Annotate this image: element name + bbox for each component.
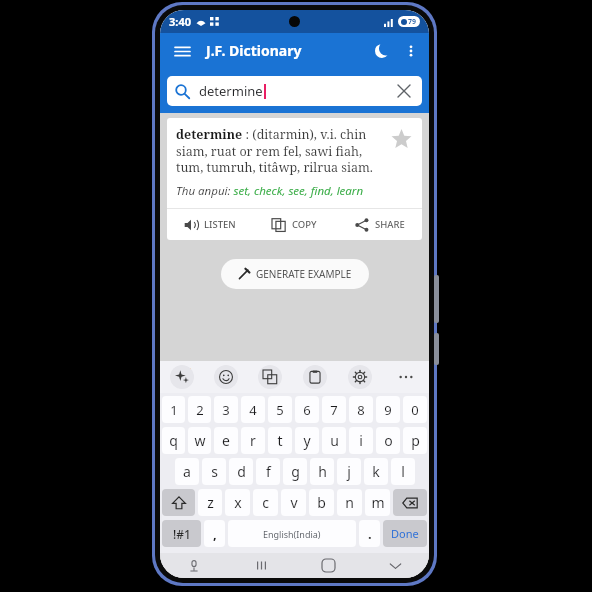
- button[interactable]: 9: [376, 396, 400, 423]
- staticText: determine : (ditarmin), v.i. chin siam, …: [176, 126, 378, 175]
- staticText: t: [277, 431, 283, 450]
- button[interactable]: Toggle dark mode: [367, 36, 397, 66]
- button[interactable]: x: [225, 489, 250, 516]
- staticText: 79: [408, 17, 417, 27]
- button[interactable]: Clear search: [390, 77, 418, 105]
- button[interactable]: e: [214, 427, 238, 454]
- button[interactable]: Backspace: [393, 489, 427, 516]
- staticText: d: [237, 462, 246, 481]
- button[interactable]: g: [283, 458, 307, 485]
- staticText: n: [345, 493, 354, 512]
- button[interactable]: v: [281, 489, 306, 516]
- button[interactable]: COPY: [252, 209, 337, 240]
- button[interactable]: t: [268, 427, 292, 454]
- button[interactable]: 3: [214, 396, 238, 423]
- button[interactable]: u: [322, 427, 346, 454]
- button[interactable]: Emoji: [214, 365, 238, 389]
- button[interactable]: d: [229, 458, 253, 485]
- button[interactable]: q: [162, 427, 185, 454]
- staticText: g: [291, 462, 300, 481]
- staticText: J.F. Dictionary: [206, 41, 302, 60]
- button[interactable]: o: [376, 427, 400, 454]
- staticText: 6: [303, 401, 311, 419]
- button[interactable]: Bookmark word: [386, 124, 416, 154]
- button[interactable]: c: [253, 489, 278, 516]
- staticText: f: [266, 462, 271, 481]
- staticText: x: [234, 493, 242, 512]
- button[interactable]: w: [188, 427, 211, 454]
- staticText: 9: [384, 401, 392, 419]
- button[interactable]: 4: [241, 396, 265, 423]
- staticText: e: [222, 431, 230, 450]
- button[interactable]: y: [295, 427, 319, 454]
- button[interactable]: Shift: [162, 489, 195, 516]
- staticText: Done: [391, 526, 419, 541]
- button[interactable]: More keyboard options: [393, 364, 419, 390]
- staticText: z: [207, 493, 214, 512]
- staticText: 4: [249, 401, 257, 419]
- button[interactable]: 2: [188, 396, 211, 423]
- staticText: .: [368, 525, 372, 543]
- button[interactable]: j: [337, 458, 361, 485]
- button[interactable]: m: [365, 489, 390, 516]
- button[interactable]: 8: [349, 396, 373, 423]
- button[interactable]: Settings: [348, 365, 372, 389]
- staticText: y: [303, 431, 311, 450]
- staticText: 8: [357, 401, 365, 419]
- staticText: i: [359, 431, 363, 450]
- button[interactable]: 7: [322, 396, 346, 423]
- staticText: u: [330, 431, 339, 450]
- staticText: q: [169, 431, 178, 450]
- staticText: 7: [330, 401, 338, 419]
- staticText: LISTEN: [204, 218, 236, 231]
- button[interactable]: 5: [268, 396, 292, 423]
- staticText: k: [372, 462, 380, 481]
- button[interactable]: .: [359, 520, 380, 547]
- button[interactable]: 6: [295, 396, 319, 423]
- staticText: j: [347, 462, 351, 481]
- button[interactable]: Clipboard: [303, 365, 327, 389]
- button[interactable]: ,: [204, 520, 225, 547]
- button[interactable]: r: [241, 427, 265, 454]
- button[interactable]: p: [403, 427, 427, 454]
- button[interactable]: More options: [397, 37, 425, 65]
- button[interactable]: !#1: [162, 520, 201, 547]
- staticText: h: [318, 462, 327, 481]
- staticText: SHARE: [375, 218, 405, 231]
- button[interactable]: 0: [403, 396, 427, 423]
- button[interactable]: English(India): [228, 520, 356, 547]
- button[interactable]: SHARE: [337, 209, 422, 240]
- button[interactable]: l: [391, 458, 415, 485]
- button[interactable]: a: [175, 458, 199, 485]
- staticText: w: [194, 431, 206, 450]
- button[interactable]: z: [198, 489, 222, 516]
- button[interactable]: Hide keyboard: [362, 553, 429, 578]
- button[interactable]: h: [310, 458, 334, 485]
- button[interactable]: s: [202, 458, 226, 485]
- staticText: o: [384, 431, 393, 450]
- staticText: v: [290, 493, 298, 512]
- button[interactable]: GENERATE EXAMPLE: [221, 259, 369, 289]
- staticText: l: [401, 462, 405, 481]
- staticText: c: [262, 493, 269, 512]
- staticText: ,: [213, 525, 217, 543]
- button[interactable]: Home: [295, 553, 362, 578]
- button[interactable]: Open navigation menu: [166, 35, 198, 67]
- button[interactable]: LISTEN: [167, 209, 252, 240]
- button[interactable]: Translate: [258, 365, 282, 389]
- button[interactable]: b: [309, 489, 334, 516]
- button[interactable]: Recent apps: [228, 553, 295, 578]
- button[interactable]: Voice input: [160, 553, 228, 578]
- button[interactable]: Done: [383, 520, 427, 547]
- button[interactable]: AI suggestions: [170, 365, 194, 389]
- button[interactable]: determine: [167, 76, 422, 106]
- staticText: English(India): [263, 528, 321, 540]
- button[interactable]: 1: [162, 396, 185, 423]
- button[interactable]: k: [364, 458, 388, 485]
- button[interactable]: n: [337, 489, 362, 516]
- staticText: !#1: [173, 526, 191, 542]
- staticText: 3:40: [169, 14, 191, 29]
- staticText: p: [411, 431, 420, 450]
- button[interactable]: f: [256, 458, 280, 485]
- button[interactable]: i: [349, 427, 373, 454]
